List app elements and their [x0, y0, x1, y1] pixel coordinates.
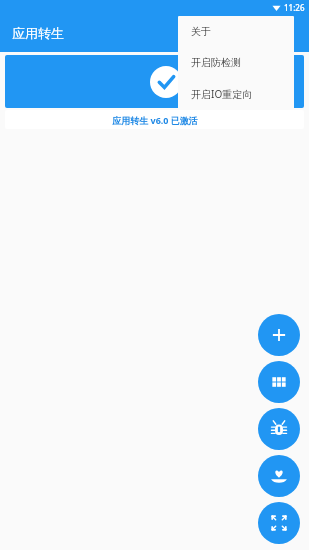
button[interactable]: 应用转生 v6.0 已激活 [5, 110, 304, 129]
staticText: 应用转生 v6.0 已激活 [112, 114, 198, 126]
button[interactable]: Add [258, 314, 300, 356]
button[interactable]: Apps grid [258, 361, 300, 403]
staticText: 开启IO重定向 [191, 87, 253, 101]
staticText: 11:26 [284, 2, 305, 13]
staticText: 关于 [191, 25, 211, 38]
button[interactable]: 开启IO重定向 [178, 78, 294, 109]
staticText: 开启防检测 [191, 56, 241, 69]
staticText: 应用转生 [12, 25, 64, 41]
button[interactable]: Fullscreen [258, 502, 300, 544]
button[interactable]: Donate [258, 455, 300, 497]
other: Activated [150, 66, 182, 98]
button[interactable]: Activated [5, 55, 304, 108]
button[interactable]: 开启防检测 [178, 47, 294, 78]
button[interactable]: 关于 [178, 16, 294, 47]
button[interactable]: Debug [258, 408, 300, 450]
